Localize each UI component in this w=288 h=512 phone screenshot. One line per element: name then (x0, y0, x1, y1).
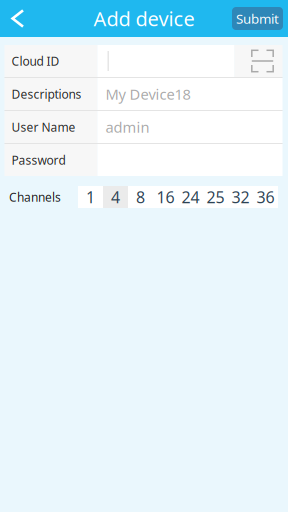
staticText: Channels (9, 189, 61, 205)
staticText: 4 (111, 186, 120, 208)
button[interactable]: Back (0, 0, 42, 37)
button[interactable]: 1 (78, 186, 103, 208)
button[interactable]: 16 (153, 186, 178, 208)
button[interactable]: Scan QR code (234, 45, 282, 77)
staticText: Password (11, 152, 65, 168)
button[interactable]: 4 (103, 186, 128, 208)
staticText: My Device18 (105, 84, 190, 104)
button[interactable]: 24 (178, 186, 203, 208)
button[interactable]: 36 (253, 186, 278, 208)
button[interactable]: Submit (232, 7, 283, 30)
button[interactable]: 8 (128, 186, 153, 208)
staticText: 8 (136, 186, 145, 208)
staticText: 16 (156, 186, 174, 208)
staticText: 24 (181, 186, 199, 208)
staticText: Add device (93, 5, 194, 32)
staticText: 25 (206, 186, 224, 208)
button[interactable]: 32 (228, 186, 253, 208)
staticText: Submit (236, 10, 279, 27)
staticText: admin (105, 117, 149, 137)
button[interactable]: 25 (203, 186, 228, 208)
staticText: Descriptions (11, 86, 81, 102)
staticText: Cloud ID (11, 53, 59, 69)
staticText: User Name (11, 119, 75, 135)
staticText: 1 (86, 186, 95, 208)
staticText: 32 (231, 186, 249, 208)
staticText: 36 (256, 186, 274, 208)
